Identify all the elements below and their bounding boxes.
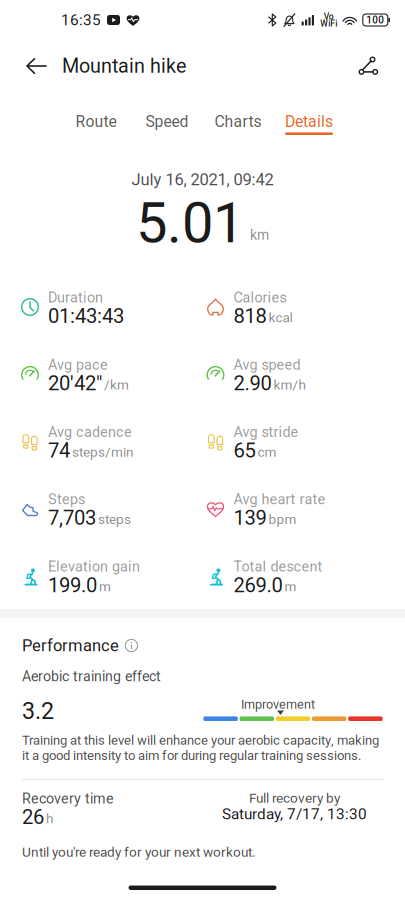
staticText: Route bbox=[75, 112, 116, 131]
staticText: Saturday, 7/17, 13:30 bbox=[222, 805, 367, 823]
staticText: 26 bbox=[22, 805, 44, 829]
staticText: Training at this level will enhance your… bbox=[22, 733, 379, 763]
staticText: 100 bbox=[366, 14, 384, 26]
staticText: 01:43:43 bbox=[48, 304, 124, 328]
staticText: Steps bbox=[48, 491, 85, 508]
staticText: Charts bbox=[214, 112, 261, 131]
staticText: Avg heart rate bbox=[233, 491, 325, 508]
staticText: 7,703 bbox=[48, 506, 96, 530]
staticText: 199.0 bbox=[48, 573, 97, 597]
staticText: Mountain hike bbox=[62, 54, 186, 77]
staticText: 20'42" bbox=[48, 371, 102, 395]
staticText: Recovery time bbox=[22, 790, 114, 807]
button[interactable]: Route bbox=[65, 92, 127, 140]
staticText: Duration bbox=[48, 289, 103, 306]
staticText: m bbox=[284, 579, 296, 595]
button[interactable]: Details bbox=[278, 92, 340, 140]
staticText: 5.01 bbox=[136, 190, 244, 256]
staticText: 16:35 bbox=[61, 11, 101, 29]
staticText: Elevation gain bbox=[48, 558, 140, 575]
staticText: 65 bbox=[233, 439, 255, 462]
staticText: WiFi bbox=[320, 18, 337, 29]
staticText: Aerobic training effect bbox=[22, 668, 161, 685]
button[interactable]: Charts bbox=[207, 92, 269, 140]
staticText: Total descent bbox=[233, 558, 322, 575]
staticText: h bbox=[46, 810, 53, 826]
staticText: bpm bbox=[268, 511, 296, 527]
staticText: m bbox=[99, 579, 111, 595]
staticText: 269.0 bbox=[233, 573, 282, 597]
button[interactable]: Back bbox=[20, 50, 52, 82]
button[interactable]: Speed bbox=[136, 92, 198, 140]
staticText: kcal bbox=[268, 309, 292, 325]
staticText: 818 bbox=[233, 304, 266, 328]
staticText: 139 bbox=[233, 506, 266, 530]
staticText: July 16, 2021, 09:42 bbox=[131, 170, 273, 189]
staticText: Calories bbox=[233, 289, 286, 306]
staticText: Avg stride bbox=[233, 424, 298, 441]
staticText: Until you're ready for your next workout… bbox=[22, 844, 256, 860]
staticText: /km bbox=[104, 377, 129, 393]
staticText: Performance bbox=[22, 636, 119, 655]
staticText: Avg cadence bbox=[48, 424, 132, 441]
staticText: Avg speed bbox=[233, 356, 300, 373]
staticText: Improvement bbox=[241, 697, 315, 712]
staticText: steps/min bbox=[72, 444, 134, 460]
button[interactable]: Share bbox=[353, 50, 385, 82]
staticText: Avg pace bbox=[48, 356, 108, 373]
staticText: 74 bbox=[48, 439, 70, 462]
staticText: 3.2 bbox=[22, 697, 54, 725]
staticText: km bbox=[250, 227, 269, 243]
staticText: Speed bbox=[145, 112, 188, 131]
staticText: Vo bbox=[324, 11, 334, 22]
staticText: cm bbox=[257, 444, 276, 460]
staticText: km/h bbox=[273, 377, 305, 393]
staticText: Details bbox=[285, 112, 333, 131]
staticText: steps bbox=[98, 511, 131, 527]
staticText: 2.90 bbox=[233, 371, 271, 395]
staticText: Full recovery by bbox=[249, 790, 340, 806]
